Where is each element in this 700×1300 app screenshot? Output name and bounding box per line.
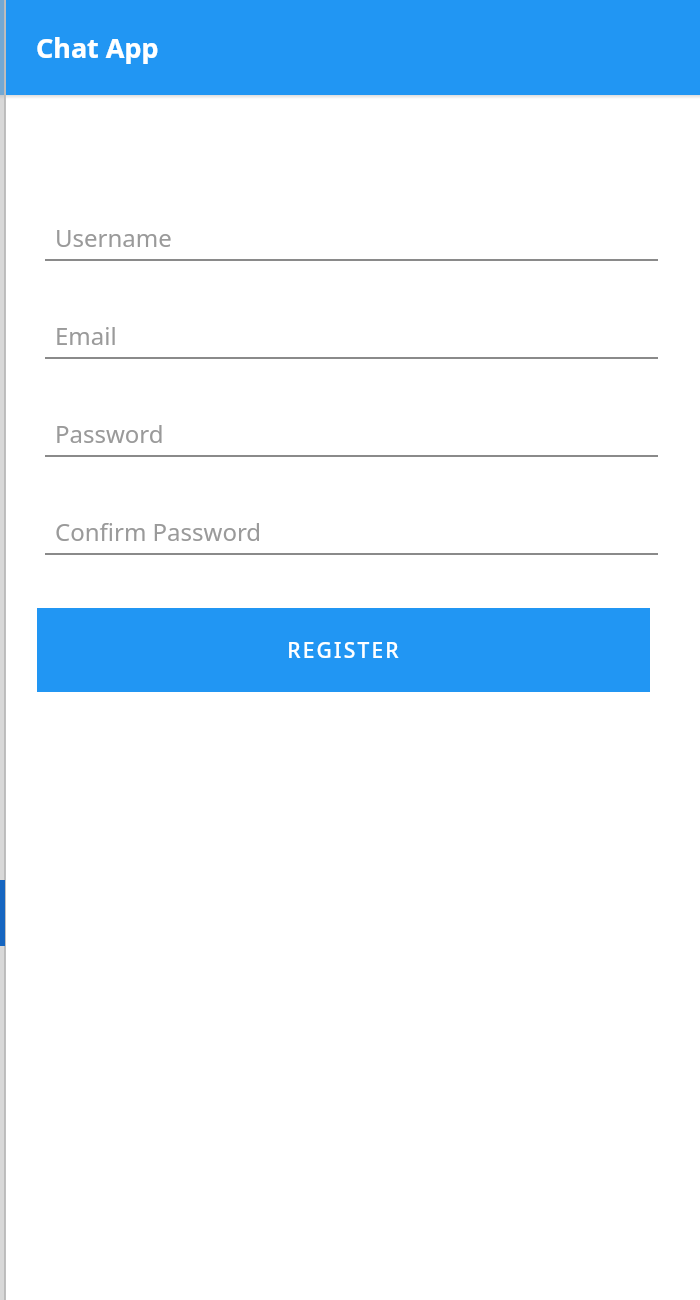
staticText: Username	[55, 221, 172, 254]
button[interactable]: Confirm Password	[45, 497, 658, 595]
staticText: Email	[55, 319, 117, 352]
staticText: Confirm Password	[55, 515, 262, 548]
staticText: Chat App	[36, 29, 159, 66]
staticText: REGISTER	[287, 636, 401, 665]
button[interactable]: Password	[45, 399, 658, 497]
button[interactable]: Email	[45, 301, 658, 399]
staticText: Password	[55, 417, 164, 450]
button[interactable]: REGISTER	[37, 608, 650, 692]
button[interactable]: Username	[45, 203, 658, 301]
